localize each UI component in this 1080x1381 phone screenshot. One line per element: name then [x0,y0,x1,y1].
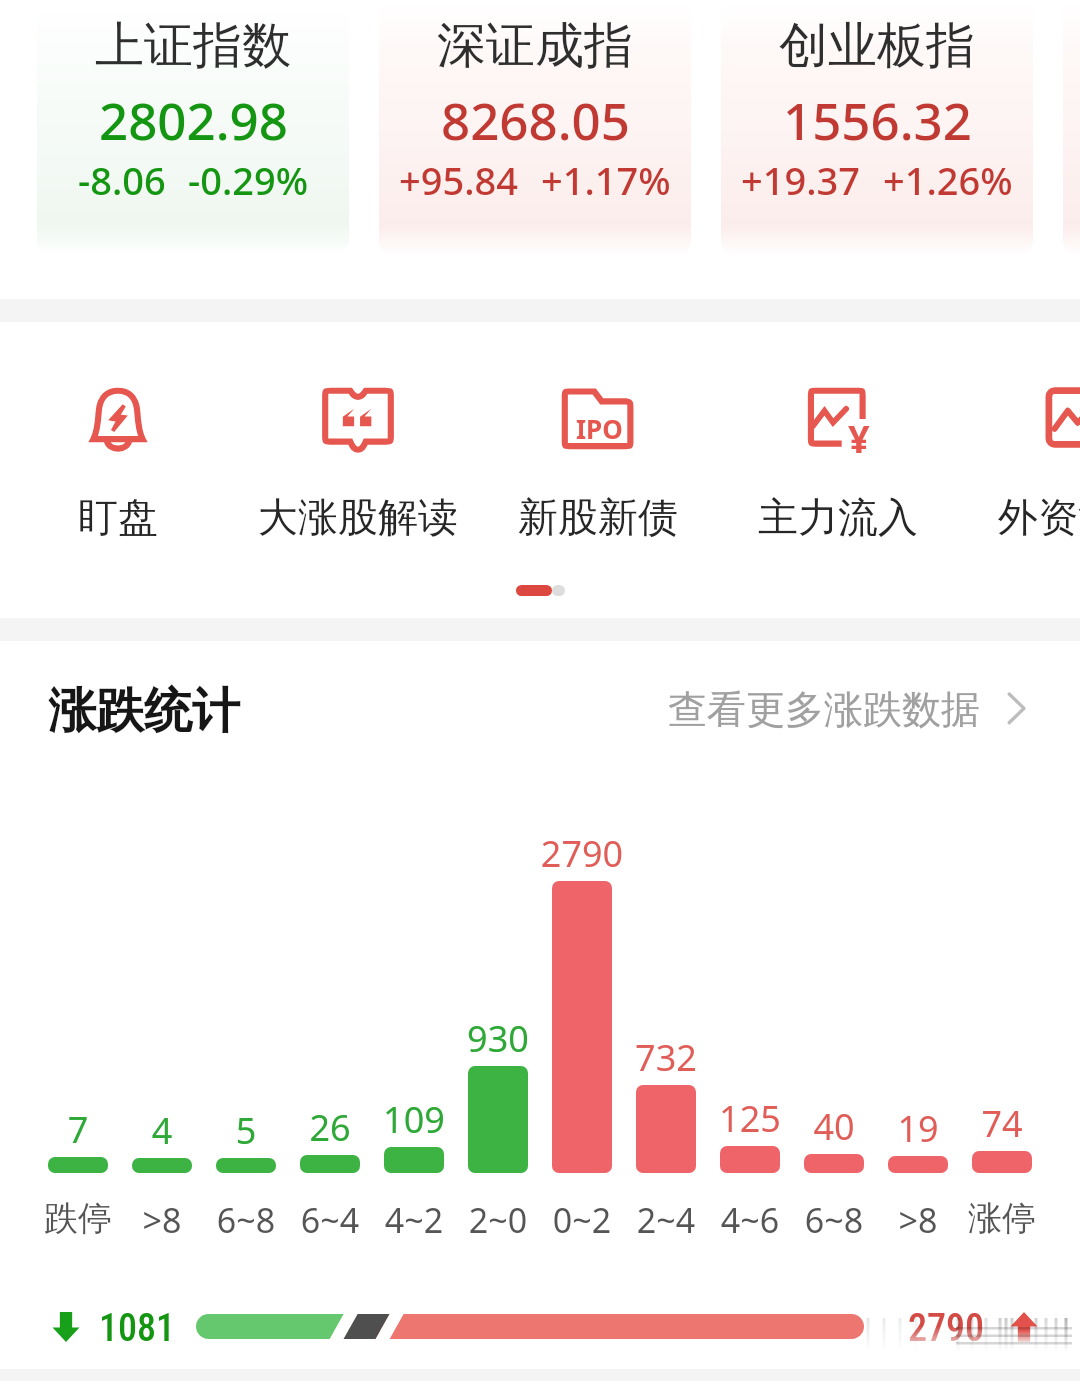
staticText: 74 [942,1099,1062,1148]
button[interactable]: 创业板指 [721,0,1033,256]
other: 大涨股解读 [317,378,399,460]
staticText: 6~8 [774,1197,894,1243]
staticText: 涨跌统计 [48,681,240,741]
staticText: 40 [774,1102,894,1151]
staticText: ¥ [848,412,870,464]
staticText: 盯盘 [78,492,158,542]
staticText: +1.26% [883,154,1013,206]
other: 新股新债 [557,378,639,460]
staticText: 深证成指 [437,15,633,77]
staticText: 新股新债 [518,492,678,542]
staticText: 2~0 [438,1197,558,1243]
other: 主力流入 [797,378,879,460]
button[interactable]: 盯盘 [0,378,238,542]
staticText: +1.17% [541,154,671,206]
staticText: +19.37 [741,154,861,206]
staticText: 6~4 [270,1197,390,1243]
other: 下跌家数 [52,1312,80,1342]
staticText: +95.84 [399,154,519,206]
other: 上涨家数 [1010,1312,1038,1342]
button[interactable]: 主力流入 [718,378,958,542]
staticText: 930 [438,1014,558,1063]
staticText: -0.29% [188,154,309,206]
staticText: >8 [858,1197,978,1243]
staticText: 涨停 [942,1197,1062,1240]
button[interactable]: 外资流入 [958,378,1080,542]
staticText: >8 [102,1197,222,1243]
staticText: 4 [102,1106,222,1155]
button[interactable]: 查看更多涨跌数据 [668,685,1036,734]
staticText: 2802.98 [99,85,288,154]
staticText: 26 [270,1103,390,1152]
staticText: 主力流入 [758,492,918,542]
staticText: 8268.05 [441,85,630,154]
staticText: 732 [606,1033,726,1082]
staticText: 外资流入 [998,492,1080,542]
staticText: 2790 [908,1306,984,1351]
staticText: 0~2 [522,1197,642,1243]
staticText: 4~6 [690,1197,810,1243]
staticText: 125 [690,1094,810,1143]
staticText: 2790 [522,829,642,878]
staticText: 2~4 [606,1197,726,1243]
staticText: 查看更多涨跌数据 [668,685,980,734]
button[interactable]: 上证指数 [37,0,349,256]
staticText: 7 [18,1105,138,1154]
button[interactable]: 深证成指 [379,0,691,256]
staticText: 跌停 [18,1197,138,1240]
staticText: 大涨股解读 [258,492,458,542]
staticText: -8.06 [78,154,166,206]
button[interactable]: 新股新债 [478,378,718,542]
button[interactable]: 大涨股解读 [238,378,478,542]
other: 盯盘 [77,378,159,460]
staticText: 1081 [99,1306,175,1351]
staticText: 109 [354,1095,474,1144]
staticText: 4~2 [354,1197,474,1243]
staticText: 创业板指 [779,15,975,77]
staticText: 1556.32 [783,85,972,154]
staticText: 19 [858,1104,978,1153]
other: 外资流入 [1037,378,1080,460]
button[interactable]: 沪深300 [1063,0,1080,256]
staticText: 5 [186,1106,306,1155]
staticText: 上证指数 [95,15,291,77]
staticText: 6~8 [186,1197,306,1243]
staticText: IPO [576,411,623,446]
